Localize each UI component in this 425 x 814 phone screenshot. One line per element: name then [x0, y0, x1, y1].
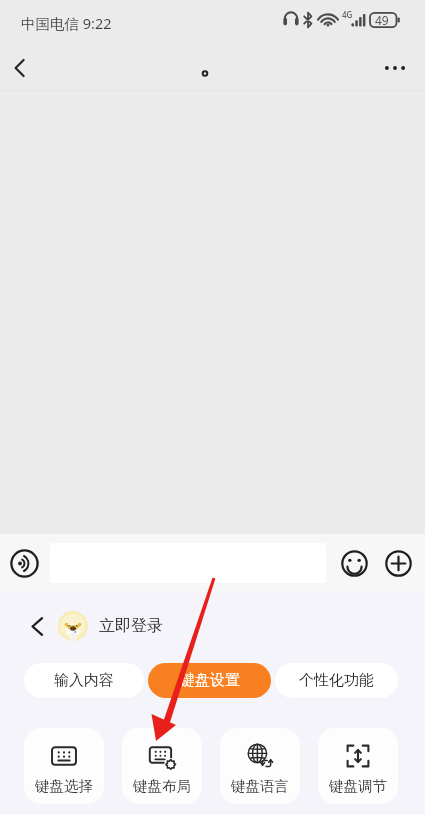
- button[interactable]: Back: [24, 613, 50, 639]
- button[interactable]: Voice input: [8, 547, 40, 579]
- button[interactable]: [50, 543, 326, 583]
- button[interactable]: 输入内容: [24, 663, 144, 698]
- staticText: 中国电信 9:22: [21, 13, 112, 33]
- button[interactable]: 键盘布局: [122, 728, 202, 804]
- button[interactable]: 键盘选择: [24, 728, 104, 804]
- staticText: 输入内容: [54, 671, 114, 690]
- staticText: 键盘语言: [231, 777, 289, 795]
- button[interactable]: Emoji: [339, 548, 369, 578]
- staticText: 4G: [342, 9, 353, 20]
- button[interactable]: More options: [377, 50, 413, 86]
- staticText: 键盘设置: [180, 671, 240, 690]
- button[interactable]: Add: [383, 548, 413, 578]
- staticText: 个性化功能: [299, 671, 374, 690]
- staticText: 键盘布局: [133, 777, 191, 795]
- button[interactable]: 键盘语言: [220, 728, 300, 804]
- button[interactable]: 键盘调节: [318, 728, 398, 804]
- staticText: 49: [375, 12, 389, 28]
- button[interactable]: Back: [2, 50, 38, 86]
- staticText: 键盘选择: [35, 777, 93, 795]
- button[interactable]: 立即登录: [99, 616, 163, 636]
- staticText: 键盘调节: [329, 777, 387, 795]
- button[interactable]: 个性化功能: [275, 663, 398, 698]
- button[interactable]: 键盘设置: [148, 663, 271, 698]
